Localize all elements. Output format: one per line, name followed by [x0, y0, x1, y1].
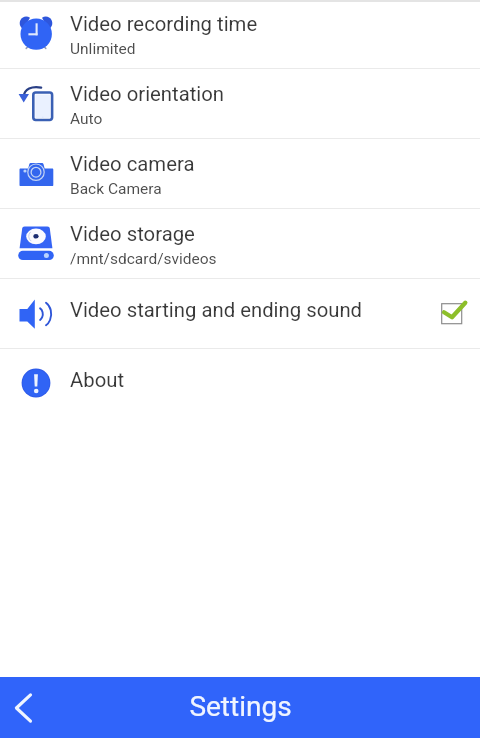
button[interactable]: Back	[0, 677, 62, 738]
button[interactable]: Video recording time	[0, 2, 480, 68]
staticText: /mnt/sdcard/svideos	[70, 250, 217, 268]
staticText: Video camera	[70, 152, 195, 176]
staticText: Unlimited	[70, 40, 136, 58]
staticText: Video storage	[70, 222, 195, 246]
staticText: Video starting and ending sound	[70, 298, 363, 322]
staticText: About	[70, 368, 125, 392]
button[interactable]: Video camera	[0, 139, 480, 208]
staticText: Auto	[70, 110, 103, 128]
button[interactable]: Video storage	[0, 209, 480, 278]
staticText: Settings	[189, 690, 292, 723]
button[interactable]: About	[0, 349, 480, 419]
staticText: Video orientation	[70, 82, 225, 106]
button[interactable]: Video starting and ending sound	[430, 292, 474, 336]
staticText: Back Camera	[70, 180, 162, 198]
button[interactable]: Video starting and ending sound	[0, 279, 480, 348]
staticText: Video recording time	[70, 12, 258, 36]
button[interactable]: Video orientation	[0, 69, 480, 138]
